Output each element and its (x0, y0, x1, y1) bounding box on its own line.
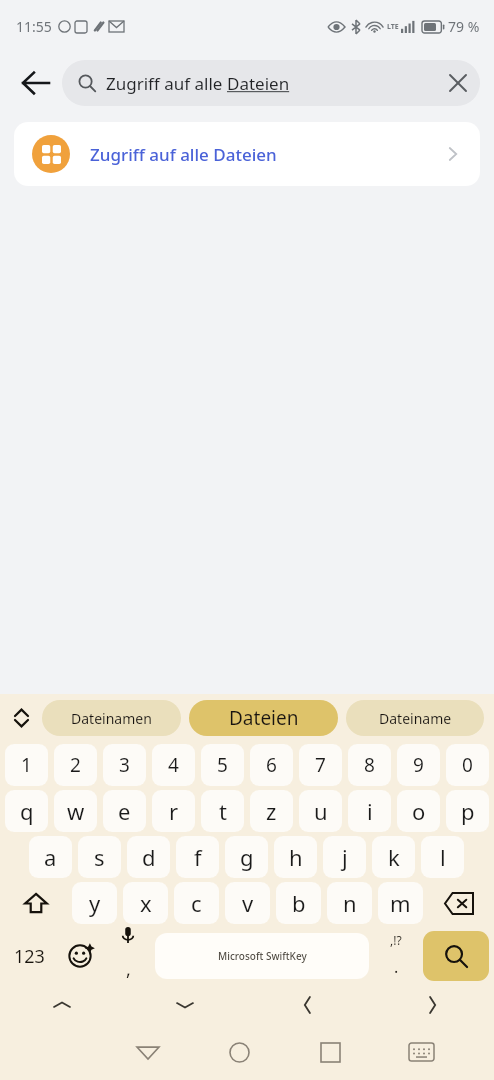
button[interactable]: 5 (201, 744, 244, 786)
button[interactable]: 9 (397, 744, 440, 786)
button[interactable]: r (152, 790, 195, 832)
staticText: 123 (14, 944, 45, 969)
button[interactable]: Recent apps (285, 1024, 376, 1080)
button[interactable]: 1 (5, 744, 48, 786)
button[interactable]: l (421, 836, 464, 878)
button[interactable]: i (348, 790, 391, 832)
button[interactable]: Right (370, 986, 494, 1024)
button[interactable]: j (323, 836, 366, 878)
button[interactable]: Microsoft SwiftKey (155, 933, 369, 979)
staticText: d (142, 842, 156, 872)
button[interactable]: 8 (348, 744, 391, 786)
button[interactable]: 4 (152, 744, 195, 786)
staticText: 0 (462, 752, 473, 778)
button[interactable]: p (446, 790, 489, 832)
button[interactable]: Zugriff auf alle (62, 60, 480, 106)
button[interactable]: o (397, 790, 440, 832)
staticText: Zugriff auf alle Dateien (90, 143, 444, 166)
button[interactable]: g (225, 836, 268, 878)
button[interactable]: Expand suggestions (0, 694, 42, 742)
button[interactable]: k (372, 836, 415, 878)
staticText: 1 (21, 752, 32, 778)
button[interactable]: Home (194, 1024, 285, 1080)
staticText: b (292, 888, 306, 918)
staticText: g (240, 842, 254, 872)
staticText: z (266, 796, 277, 826)
staticText: q (20, 796, 34, 826)
staticText: c (191, 888, 202, 918)
staticText: 3 (119, 752, 130, 778)
button[interactable]: Switch keyboard (376, 1024, 467, 1080)
staticText: a (44, 842, 57, 872)
button[interactable]: x (123, 882, 168, 924)
button[interactable]: 3 (103, 744, 146, 786)
staticText: Microsoft SwiftKey (218, 949, 307, 963)
staticText: 11:55 (16, 17, 52, 36)
button[interactable]: Back (102, 1024, 194, 1080)
button[interactable]: Dateien (189, 700, 338, 736)
button[interactable]: 123 (2, 926, 56, 986)
button[interactable]: 2 (54, 744, 97, 786)
button[interactable]: f (176, 836, 219, 878)
button[interactable]: y (72, 882, 117, 924)
staticText: h (289, 842, 303, 872)
staticText: x (140, 888, 152, 918)
button[interactable]: h (274, 836, 317, 878)
staticText: p (461, 796, 475, 826)
button[interactable]: d (127, 836, 170, 878)
staticText: 79 % (448, 17, 480, 36)
button[interactable]: 7 (299, 744, 342, 786)
staticText: LTE (387, 22, 399, 32)
button[interactable]: e (103, 790, 146, 832)
button[interactable]: Back (10, 57, 62, 109)
button[interactable]: m (378, 882, 423, 924)
button[interactable]: Zugriff auf alle Dateien (14, 122, 480, 186)
staticText: s (94, 842, 105, 872)
button[interactable]: Voice input and comma (104, 926, 152, 986)
staticText: 9 (413, 752, 424, 778)
staticText: j (342, 842, 348, 872)
button[interactable]: Shift (2, 880, 69, 926)
button[interactable]: a (29, 836, 72, 878)
button[interactable]: 0 (446, 744, 489, 786)
button[interactable]: c (174, 882, 219, 924)
staticText: n (343, 888, 357, 918)
button[interactable]: 6 (250, 744, 293, 786)
staticText: r (169, 796, 179, 826)
staticText: e (118, 796, 131, 826)
button[interactable]: Up (0, 986, 123, 1024)
button[interactable]: Delete (426, 880, 492, 926)
button[interactable]: Search (423, 931, 489, 981)
button[interactable]: u (299, 790, 342, 832)
button[interactable]: n (327, 882, 372, 924)
button[interactable]: Emoji (56, 926, 104, 986)
button[interactable]: Dateinamen (42, 700, 181, 736)
staticText: 7 (315, 752, 326, 778)
button[interactable]: z (250, 790, 293, 832)
staticText: k (388, 842, 400, 872)
staticText: l (440, 842, 446, 872)
button[interactable]: v (225, 882, 270, 924)
staticText: , (126, 957, 131, 982)
staticText: y (89, 888, 101, 918)
button[interactable]: Dateiname (346, 700, 484, 736)
staticText: Dateien (229, 705, 299, 731)
staticText: Zugriff auf alle (106, 72, 227, 95)
button[interactable]: w (54, 790, 97, 832)
button[interactable]: s (78, 836, 121, 878)
button[interactable]: Down (123, 986, 246, 1024)
button[interactable]: q (5, 790, 48, 832)
button[interactable]: t (201, 790, 244, 832)
button[interactable]: Clear search (436, 61, 480, 105)
staticText: 5 (217, 752, 228, 778)
staticText: 6 (266, 752, 277, 778)
staticText: u (314, 796, 328, 826)
button[interactable]: Left (246, 986, 370, 1024)
staticText: . (394, 956, 399, 978)
staticText: Dateien (227, 72, 290, 95)
staticText: 8 (364, 752, 375, 778)
staticText: Dateiname (379, 709, 452, 728)
button[interactable]: b (276, 882, 321, 924)
staticText: m (390, 888, 411, 918)
button[interactable]: Punctuation (372, 926, 420, 986)
